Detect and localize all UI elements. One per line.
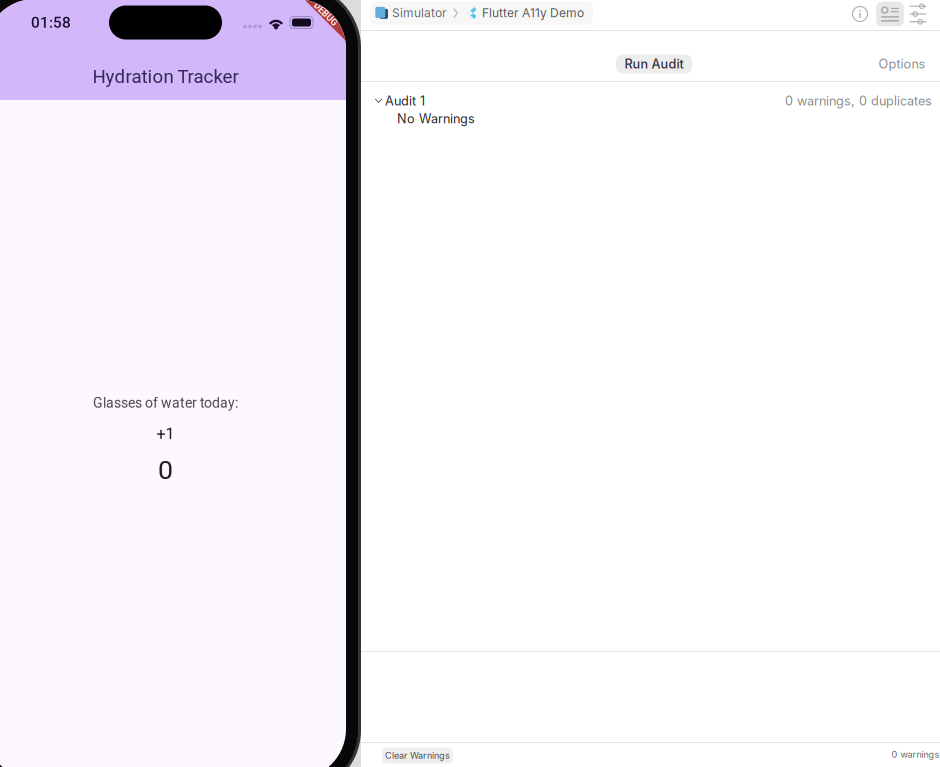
- button[interactable]: Audit 1: [361, 92, 940, 110]
- staticText: Clear Warnings: [385, 750, 450, 761]
- button[interactable]: Show inspection information: [851, 5, 869, 23]
- button[interactable]: Clear Warnings: [382, 747, 453, 763]
- staticText: Flutter A11y Demo: [482, 6, 584, 20]
- button[interactable]: Run Audit: [616, 54, 692, 73]
- staticText: 01:58: [31, 13, 71, 31]
- staticText: DEBUG: [314, 12, 343, 23]
- staticText: 0 warnings, 0 duplicates: [785, 93, 932, 109]
- button[interactable]: Audit: [876, 1, 904, 26]
- staticText: 0 warnings: [891, 749, 939, 760]
- staticText: 0: [158, 454, 173, 486]
- staticText: Simulator: [392, 6, 447, 20]
- button[interactable]: +1: [142, 421, 188, 447]
- button[interactable]: Inspector settings: [909, 5, 926, 22]
- button[interactable]: Simulator: [370, 1, 593, 25]
- staticText: Audit 1: [385, 93, 425, 109]
- staticText: +1: [156, 425, 174, 443]
- staticText: Options: [878, 56, 925, 72]
- staticText: No Warnings: [397, 111, 475, 126]
- button[interactable]: Options: [878, 54, 925, 73]
- staticText: Hydration Tracker: [92, 66, 238, 87]
- staticText: Glasses of water today:: [93, 395, 238, 411]
- staticText: Run Audit: [624, 56, 683, 72]
